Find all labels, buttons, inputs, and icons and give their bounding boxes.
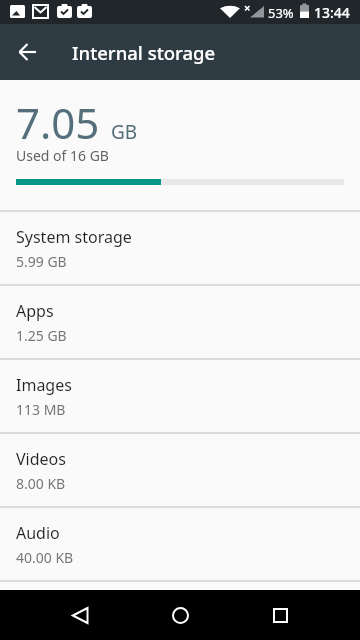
button[interactable] xyxy=(230,590,330,640)
staticText: 5.99 GB xyxy=(16,252,67,271)
staticText: 7.05 xyxy=(16,94,111,151)
staticText: Audio xyxy=(16,522,60,544)
button[interactable] xyxy=(0,24,56,80)
button[interactable] xyxy=(130,590,230,640)
button[interactable]: System storage xyxy=(0,212,360,284)
button[interactable]: Audio xyxy=(0,508,360,580)
staticText: 40.00 KB xyxy=(16,548,74,567)
staticText: 13:44 xyxy=(314,3,350,22)
button[interactable] xyxy=(30,590,130,640)
staticText: Internal storage xyxy=(72,40,216,65)
button[interactable]: Videos xyxy=(0,434,360,506)
staticText: 8.00 KB xyxy=(16,474,66,493)
staticText: System storage xyxy=(16,226,132,248)
staticText: Used of 16 GB xyxy=(16,146,109,165)
staticText: Apps xyxy=(16,300,54,322)
staticText: Images xyxy=(16,374,72,396)
staticText: 113 MB xyxy=(16,400,66,419)
staticText: 53% xyxy=(268,4,294,22)
button[interactable]: Images xyxy=(0,360,360,432)
button[interactable]: Apps xyxy=(0,286,360,358)
staticText: GB xyxy=(111,119,138,145)
staticText: Videos xyxy=(16,448,66,470)
staticText: 1.25 GB xyxy=(16,326,67,345)
